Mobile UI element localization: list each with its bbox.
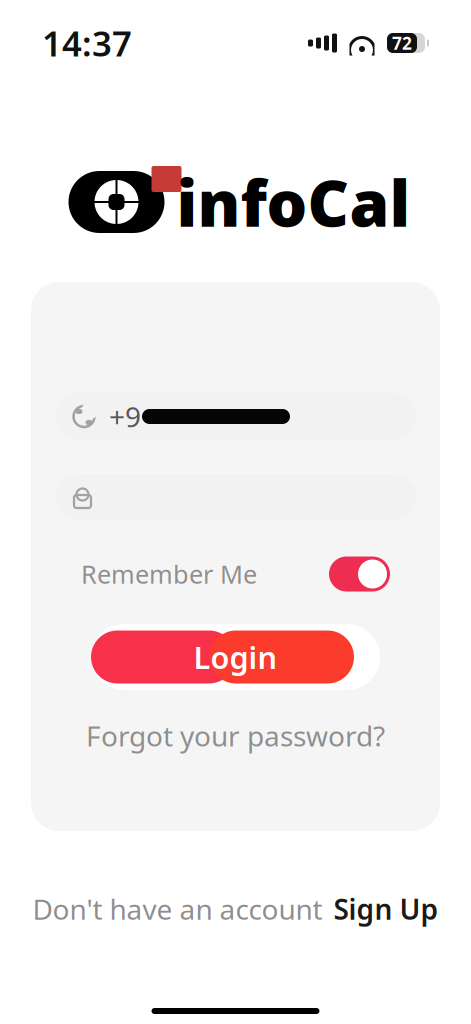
staticText: Remember Me [81,557,257,591]
staticText: 72 [392,31,412,54]
staticText: infoCal [176,159,410,244]
staticText: Don't have an account [32,890,322,928]
staticText: Forgot your password? [86,717,385,754]
button[interactable]: Sign Up [333,890,438,928]
staticText: Sign Up [333,890,438,928]
staticText: 14:37 [42,20,132,66]
button[interactable]: Login [91,624,380,690]
staticText: +9 [109,398,141,435]
button[interactable]: Remember Me [329,556,390,591]
staticText: Login [193,637,277,677]
button[interactable]: Forgot your password? [71,711,400,760]
